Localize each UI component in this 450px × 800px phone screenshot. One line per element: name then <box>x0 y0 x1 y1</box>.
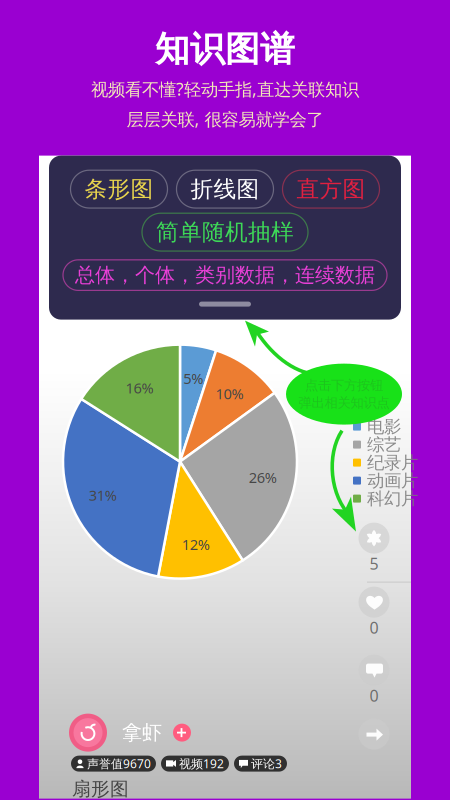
staticText: 综艺 <box>367 434 401 455</box>
staticText: 12% <box>182 535 210 554</box>
button[interactable]: 评论 <box>358 655 389 686</box>
staticText: 层层关联, 很容易就学会了 <box>126 108 323 131</box>
button[interactable]: 直方图 <box>282 170 379 208</box>
staticText: 声誉值9670 <box>87 756 151 771</box>
button[interactable]: 关注 <box>173 724 191 742</box>
button[interactable]: 评论3 <box>234 756 287 772</box>
staticText: 点击下方按钮 <box>305 377 383 394</box>
staticText: 16% <box>125 378 153 398</box>
staticText: 科幻片 <box>367 488 418 509</box>
staticText: 条形图 <box>84 175 153 203</box>
staticText: 扇形图 <box>72 778 129 800</box>
staticText: 纪录片 <box>367 452 418 473</box>
button[interactable]: 点赞 <box>358 587 389 618</box>
staticText: 简单随机抽样 <box>156 218 294 246</box>
staticText: 直方图 <box>296 175 365 203</box>
staticText: 拿虾 <box>122 720 162 745</box>
staticText: 视频192 <box>179 756 224 771</box>
staticText: 动画片 <box>367 470 418 491</box>
staticText: 知识图谱 <box>155 28 295 71</box>
staticText: 弹出相关知识点 <box>298 395 389 411</box>
staticText: 31% <box>89 485 117 505</box>
button[interactable]: 视频192 <box>161 756 229 772</box>
button[interactable]: 总体，个体，类别数据，连续数据 <box>63 260 387 290</box>
button[interactable]: 条形图 <box>70 170 167 208</box>
staticText: 10% <box>215 384 243 403</box>
staticText: 电影 <box>367 416 401 437</box>
button[interactable]: 用户头像 <box>69 714 107 752</box>
staticText: 折线图 <box>190 175 259 203</box>
button[interactable]: 收藏 <box>358 523 389 554</box>
staticText: 视频看不懂?轻动手指,直达关联知识 <box>91 78 359 101</box>
staticText: 0 <box>369 617 378 638</box>
staticText: 0 <box>369 685 378 706</box>
button[interactable]: 简单随机抽样 <box>142 213 308 251</box>
staticText: 评论3 <box>251 756 282 771</box>
staticText: 总体，个体，类别数据，连续数据 <box>75 263 375 287</box>
staticText: 5% <box>183 369 203 388</box>
staticText: 5 <box>369 553 378 574</box>
staticText: 26% <box>249 468 277 487</box>
button[interactable]: 声誉值9670 <box>71 756 156 772</box>
button[interactable]: 折线图 <box>176 170 273 208</box>
button[interactable]: 分享 <box>358 719 389 750</box>
